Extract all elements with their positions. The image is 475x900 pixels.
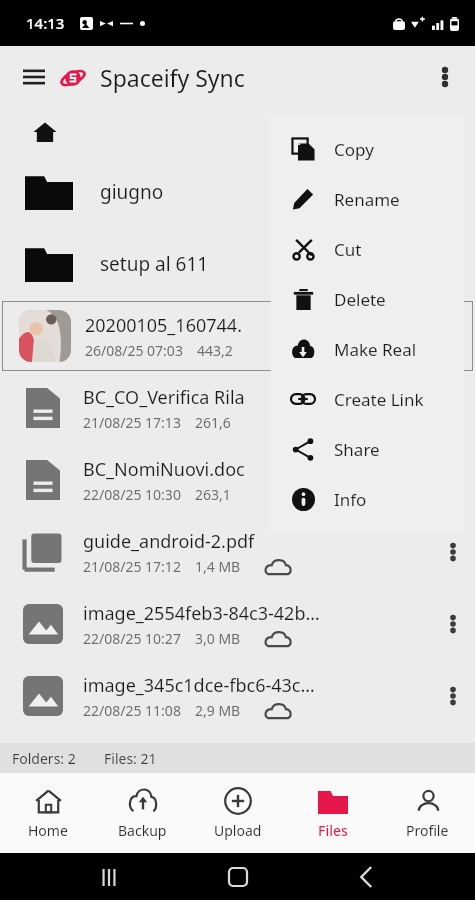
staticText: setup al 611 [100, 251, 209, 277]
button[interactable]: Make Real [271, 324, 464, 374]
button[interactable]: Share [271, 424, 464, 474]
button[interactable]: Files [285, 773, 380, 853]
button[interactable]: 20200105_160744. [2, 301, 473, 371]
staticText: guide_android-2.pdf [83, 529, 255, 554]
button[interactable]: image_345c1dce-fbc6-43c… [0, 660, 475, 732]
button[interactable]: Home [218, 857, 258, 897]
staticText: Home [28, 821, 68, 840]
button[interactable]: Home [0, 773, 95, 853]
button[interactable]: Copy [271, 124, 464, 174]
button[interactable]: Cut [271, 224, 464, 274]
staticText: Create Link [334, 388, 424, 411]
button[interactable]: giugno [0, 156, 475, 228]
button[interactable]: File options [431, 674, 475, 718]
staticText: Info [334, 488, 367, 511]
staticText: image_2554feb3-84c3-42b… [83, 601, 320, 626]
staticText: 3,0 MB [195, 629, 241, 648]
staticText: 2,9 MB [195, 701, 241, 720]
button[interactable]: Back [346, 857, 386, 897]
staticText: Folders: 2 [12, 749, 76, 768]
staticText: giugno [100, 179, 164, 205]
staticText: Spaceify Sync [100, 62, 245, 93]
button[interactable]: Menu [12, 55, 56, 99]
staticText: 21/08/25 17:12 [83, 557, 181, 576]
button[interactable]: guide_android-2.pdf [0, 516, 475, 588]
staticText: BC_CO_Verifica Rila [83, 385, 245, 410]
button[interactable]: File options [431, 530, 475, 574]
staticText: Upload [214, 821, 262, 840]
staticText: 21/08/25 17:13 [83, 413, 181, 432]
button[interactable]: Backup [95, 773, 190, 853]
button[interactable]: image_2554feb3-84c3-42b… [0, 588, 475, 660]
button[interactable]: Delete [271, 274, 464, 324]
staticText: 263,1 [195, 485, 235, 504]
staticText: Files [318, 821, 348, 840]
staticText: 443,2 [197, 341, 237, 360]
staticText: 26/08/25 07:03 [85, 341, 183, 360]
button[interactable]: BC_NomiNuovi.doc [0, 444, 475, 516]
staticText: 1,4 MB [195, 557, 241, 576]
staticText: Files: 21 [104, 749, 157, 768]
button[interactable]: Upload [190, 773, 285, 853]
staticText: Cut [334, 238, 362, 261]
staticText: Profile [406, 821, 449, 840]
staticText: 20200105_160744. [85, 313, 242, 338]
staticText: Backup [118, 821, 167, 840]
staticText: Make Real [334, 338, 417, 361]
button[interactable]: Profile [380, 773, 475, 853]
staticText: 22/08/25 10:27 [83, 629, 181, 648]
button[interactable]: setup al 611 [0, 228, 475, 300]
button[interactable]: Home folder [0, 108, 475, 156]
button[interactable]: More options [423, 55, 467, 99]
staticText: Delete [334, 288, 386, 311]
button[interactable]: Rename [271, 174, 464, 224]
staticText: 22/08/25 10:30 [83, 485, 181, 504]
button[interactable]: BC_CO_Verifica Rila [0, 372, 475, 444]
staticText: Copy [334, 138, 374, 161]
staticText: Share [334, 438, 380, 461]
staticText: 14:13 [26, 13, 65, 33]
staticText: BC_NomiNuovi.doc [83, 457, 245, 482]
staticText: 261,6 [195, 413, 235, 432]
button[interactable]: Info [271, 474, 464, 524]
staticText: 22/08/25 11:08 [83, 701, 181, 720]
button[interactable]: Create Link [271, 374, 464, 424]
staticText: image_345c1dce-fbc6-43c… [83, 673, 315, 698]
button[interactable]: File options [431, 602, 475, 646]
button[interactable]: Recents [89, 857, 129, 897]
staticText: Rename [334, 188, 400, 211]
